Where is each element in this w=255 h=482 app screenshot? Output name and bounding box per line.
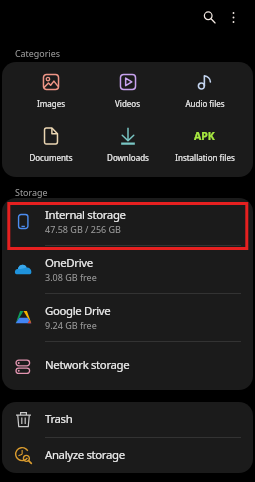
- button[interactable]: Documents: [12, 127, 89, 163]
- staticText: Trash: [45, 411, 73, 427]
- button[interactable]: Images: [12, 73, 89, 109]
- button[interactable]: Trash: [2, 402, 253, 437]
- staticText: Videos: [115, 98, 140, 109]
- staticText: OneDrive: [45, 255, 93, 271]
- staticText: Google Drive: [45, 303, 111, 319]
- staticText: Downloads: [107, 152, 149, 163]
- button[interactable]: Internal storage: [2, 198, 253, 245]
- staticText: Storage: [15, 186, 48, 198]
- button[interactable]: Network storage: [2, 342, 253, 390]
- staticText: Internal storage: [45, 207, 126, 223]
- staticText: 9.24 GB free: [45, 319, 97, 331]
- button[interactable]: Videos: [89, 73, 166, 109]
- button[interactable]: Search: [195, 3, 223, 31]
- staticText: 47.58 GB / 256 GB: [45, 223, 121, 235]
- staticText: 3.08 GB free: [45, 271, 97, 283]
- button[interactable]: Audio files: [166, 73, 243, 109]
- button[interactable]: More options: [223, 7, 244, 28]
- staticText: Audio files: [185, 98, 225, 109]
- button[interactable]: OneDrive: [2, 246, 253, 293]
- staticText: Analyze storage: [45, 447, 125, 463]
- staticText: Images: [37, 98, 65, 109]
- button[interactable]: APK: [166, 127, 243, 163]
- staticText: Installation files: [175, 152, 235, 163]
- staticText: Network storage: [45, 357, 130, 373]
- button[interactable]: Analyze storage: [2, 438, 253, 473]
- staticText: Documents: [29, 152, 73, 163]
- staticText: APK: [194, 129, 215, 143]
- button[interactable]: Downloads: [89, 127, 166, 163]
- staticText: Categories: [15, 47, 60, 59]
- button[interactable]: Google Drive: [2, 294, 253, 341]
